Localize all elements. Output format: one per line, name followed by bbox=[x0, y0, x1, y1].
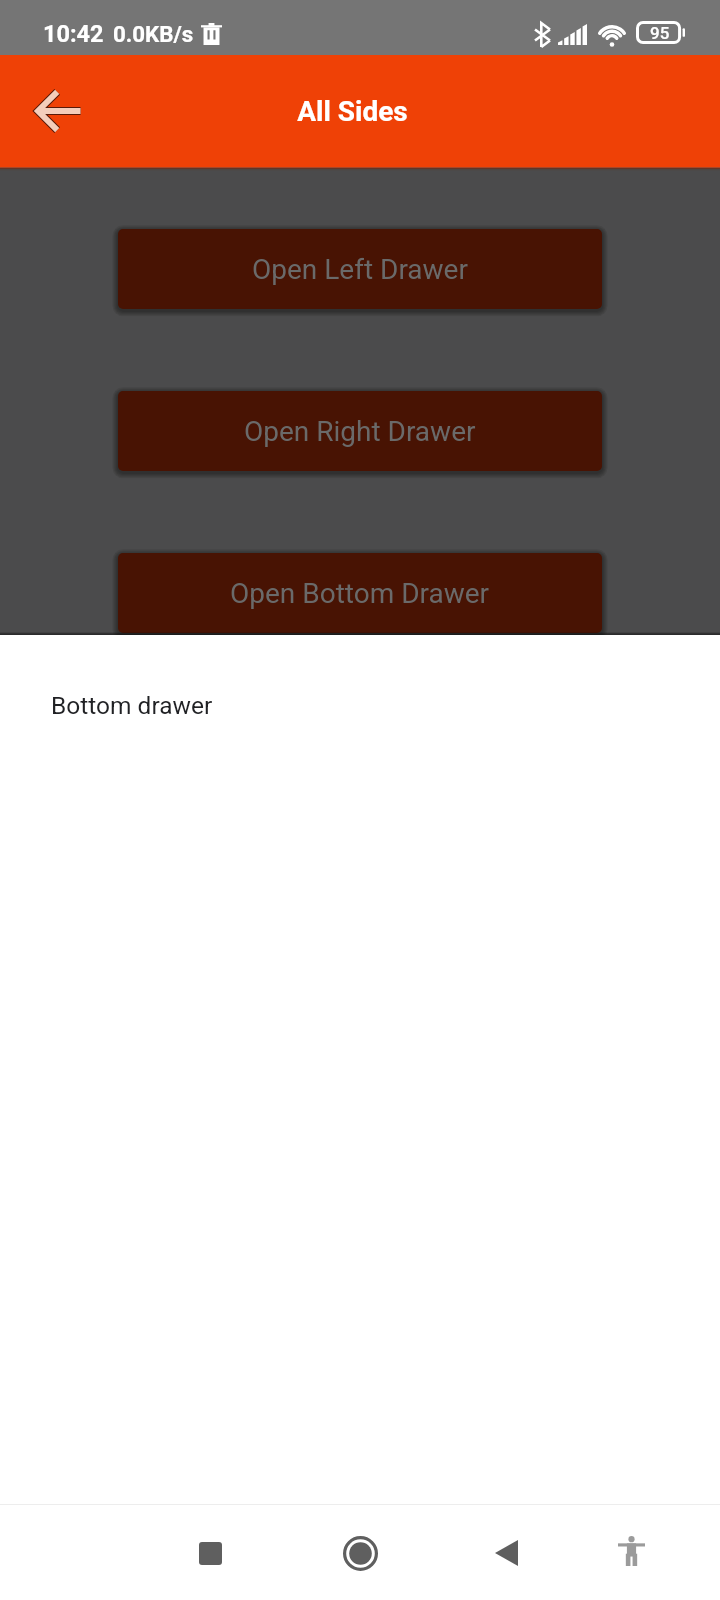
staticText: 10:42 bbox=[43, 20, 104, 48]
button[interactable]: Open Right Drawer bbox=[118, 391, 602, 471]
button[interactable]: Open Left Drawer bbox=[118, 229, 602, 309]
staticText: Open Right Drawer bbox=[244, 415, 476, 448]
staticText: 95 bbox=[650, 23, 670, 43]
button[interactable]: Back bbox=[22, 75, 94, 147]
button[interactable]: Recents bbox=[175, 1518, 245, 1588]
button[interactable]: Back bbox=[471, 1518, 541, 1588]
staticText: Open Bottom Drawer bbox=[230, 577, 490, 610]
staticText: Bottom drawer bbox=[51, 691, 213, 720]
staticText: Open Left Drawer bbox=[252, 253, 468, 286]
staticText: 0.0KB/s bbox=[113, 21, 194, 47]
button[interactable]: Open Bottom Drawer bbox=[118, 553, 602, 633]
staticText: All Sides bbox=[297, 95, 408, 128]
button[interactable]: Home bbox=[325, 1518, 395, 1588]
button[interactable]: Accessibility bbox=[596, 1516, 666, 1586]
